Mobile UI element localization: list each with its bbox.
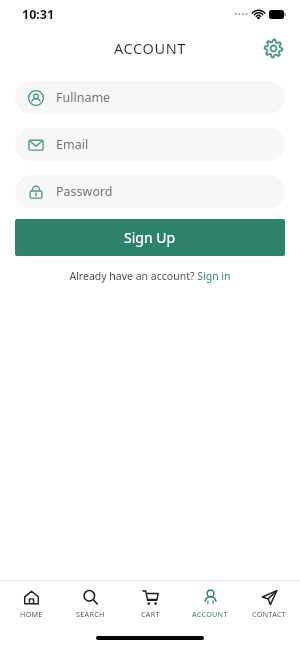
- button[interactable]: HOME: [2, 586, 60, 622]
- staticText: 10:31: [22, 6, 55, 23]
- button[interactable]: Sign Up: [15, 219, 285, 256]
- staticText: SEARCH: [76, 609, 105, 619]
- staticText: CART: [141, 609, 160, 619]
- button[interactable]: Already have an account? Sign in: [63, 267, 237, 285]
- button[interactable]: Fullname: [15, 81, 285, 114]
- button[interactable]: Email: [15, 128, 285, 161]
- button[interactable]: Settings: [256, 31, 290, 65]
- staticText: Sign Up: [124, 228, 176, 247]
- staticText: Already have an account? Sign in: [69, 269, 231, 283]
- staticText: ACCOUNT: [114, 38, 186, 58]
- staticText: Fullname: [56, 89, 111, 106]
- button[interactable]: Password: [15, 175, 285, 208]
- staticText: Password: [56, 183, 113, 200]
- staticText: HOME: [20, 609, 43, 619]
- staticText: Email: [56, 136, 89, 153]
- staticText: CONTACT: [252, 609, 287, 619]
- staticText: ACCOUNT: [192, 609, 228, 619]
- button[interactable]: ACCOUNT: [181, 586, 239, 622]
- button[interactable]: CONTACT: [240, 586, 298, 622]
- button[interactable]: SEARCH: [61, 586, 119, 622]
- button[interactable]: CART: [121, 586, 179, 622]
